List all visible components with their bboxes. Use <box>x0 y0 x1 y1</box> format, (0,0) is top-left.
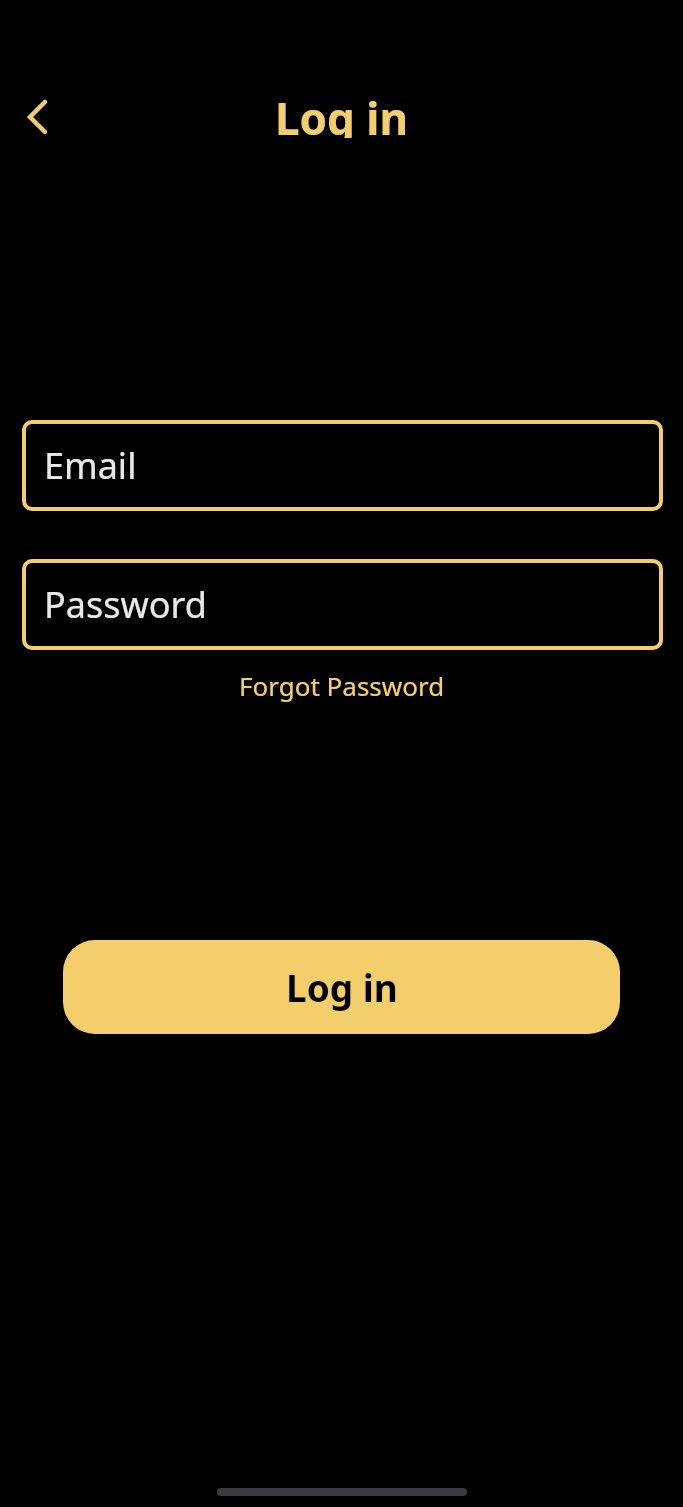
staticText: Password <box>44 580 207 629</box>
staticText: Log in <box>286 962 398 1012</box>
button[interactable]: Email <box>22 420 663 511</box>
staticText: Log in <box>275 88 409 138</box>
button[interactable]: Log in <box>63 940 620 1034</box>
button[interactable] <box>17 93 65 141</box>
button[interactable]: Password <box>22 559 663 650</box>
staticText: Email <box>44 441 137 490</box>
button[interactable]: Forgot Password <box>239 668 445 703</box>
